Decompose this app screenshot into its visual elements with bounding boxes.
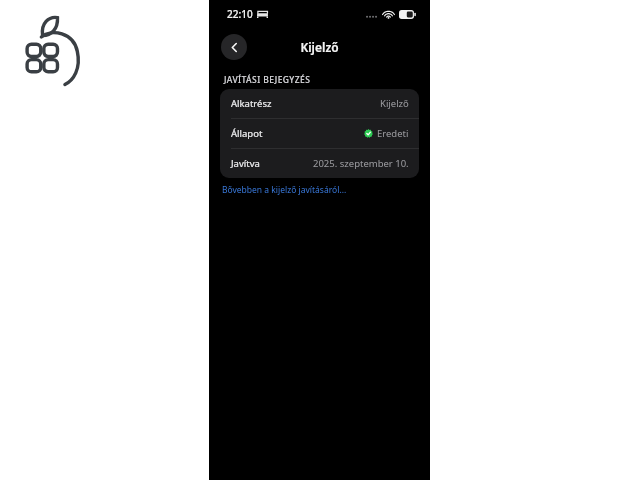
staticText: Bővebben a kijelző javításáról... [222,184,347,196]
staticText: Állapot [231,127,263,140]
staticText: Eredeti [377,127,409,140]
button[interactable]: Állapot [220,119,419,148]
button[interactable]: Bővebben a kijelző javításáról... [222,184,347,196]
button[interactable]: Javítva [220,149,419,178]
staticText: Kijelző [300,39,339,55]
staticText: 2025. szeptember 10. [313,157,409,170]
staticText: 22:10 [227,7,253,21]
staticText: Alkatrész [231,97,272,110]
button[interactable]: Alkatrész [220,89,419,118]
staticText: Javítva [231,157,260,170]
staticText: Kijelző [380,97,409,110]
button[interactable]: Vissza [221,34,247,60]
staticText: JAVÍTÁSI BEJEGYZÉS [224,74,311,86]
